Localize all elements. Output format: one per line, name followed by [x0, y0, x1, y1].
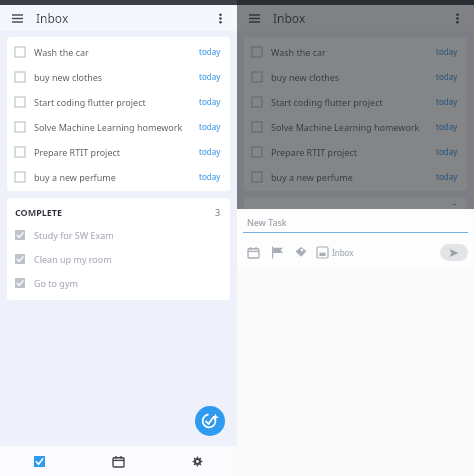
- button[interactable]: Clean up my room: [7, 247, 230, 271]
- button[interactable]: Send: [440, 244, 468, 261]
- button[interactable]: Priority: [267, 242, 287, 262]
- staticText: buy a new perfume: [271, 171, 436, 183]
- staticText: Wash the car: [34, 46, 199, 58]
- staticText: Solve Machine Learning homework: [34, 121, 199, 133]
- staticText: Study for SW Exam: [34, 229, 114, 241]
- staticText: Clean up my room: [34, 253, 112, 265]
- staticText: 3: [215, 206, 221, 218]
- staticText: Inbox: [273, 10, 306, 26]
- button[interactable]: Solve Machine Learning homework: [7, 114, 230, 139]
- staticText: Start coding flutter project: [271, 96, 436, 108]
- button[interactable]: buy a new perfume: [7, 164, 230, 189]
- button[interactable]: Inbox: [315, 247, 356, 258]
- staticText: today: [436, 171, 458, 182]
- staticText: Inbox: [36, 10, 69, 26]
- staticText: today: [436, 146, 458, 157]
- staticText: Prepare RTIT project: [34, 146, 199, 158]
- button[interactable]: Open navigation menu: [7, 8, 27, 28]
- staticText: Prepare RTIT project: [271, 146, 436, 158]
- staticText: today: [436, 96, 458, 107]
- button[interactable]: COMPLETE: [7, 201, 230, 223]
- staticText: today: [199, 71, 221, 82]
- button[interactable]: Settings: [158, 446, 237, 476]
- button[interactable]: Start coding flutter project: [244, 89, 467, 114]
- staticText: New Task: [247, 216, 287, 228]
- button[interactable]: Due date: [243, 242, 263, 262]
- button[interactable]: Wash the car: [7, 39, 230, 64]
- button[interactable]: Study for SW Exam: [7, 223, 230, 247]
- button[interactable]: More options: [210, 8, 230, 28]
- staticText: Inbox: [332, 247, 354, 258]
- staticText: today: [199, 146, 221, 157]
- staticText: today: [199, 96, 221, 107]
- button[interactable]: buy a new perfume: [244, 164, 467, 189]
- staticText: today: [436, 121, 458, 132]
- button[interactable]: Wash the car: [244, 39, 467, 64]
- staticText: buy a new perfume: [34, 171, 199, 183]
- staticText: today: [199, 171, 221, 182]
- button[interactable]: More options: [447, 8, 467, 28]
- button[interactable]: Open navigation menu: [244, 8, 264, 28]
- staticText: Wash the car: [271, 46, 436, 58]
- staticText: Go to gym: [34, 277, 78, 289]
- staticText: COMPLETE: [15, 206, 63, 218]
- staticText: today: [199, 46, 221, 57]
- staticText: today: [436, 71, 458, 82]
- staticText: 3: [452, 201, 458, 205]
- button[interactable]: buy new clothes: [244, 64, 467, 89]
- button[interactable]: Label: [291, 242, 311, 262]
- button[interactable]: Prepare RTIT project: [244, 139, 467, 164]
- staticText: buy new clothes: [34, 71, 199, 83]
- staticText: Start coding flutter project: [34, 96, 199, 108]
- button[interactable]: buy new clothes: [7, 64, 230, 89]
- staticText: today: [436, 46, 458, 57]
- staticText: Solve Machine Learning homework: [271, 121, 436, 133]
- button[interactable]: Add task: [195, 406, 225, 436]
- staticText: buy new clothes: [271, 71, 436, 83]
- staticText: today: [199, 121, 221, 132]
- button[interactable]: Solve Machine Learning homework: [244, 114, 467, 139]
- button[interactable]: Start coding flutter project: [7, 89, 230, 114]
- button[interactable]: Go to gym: [7, 271, 230, 295]
- button[interactable]: Tasks: [0, 446, 79, 476]
- button[interactable]: Calendar: [79, 446, 158, 476]
- button[interactable]: Prepare RTIT project: [7, 139, 230, 164]
